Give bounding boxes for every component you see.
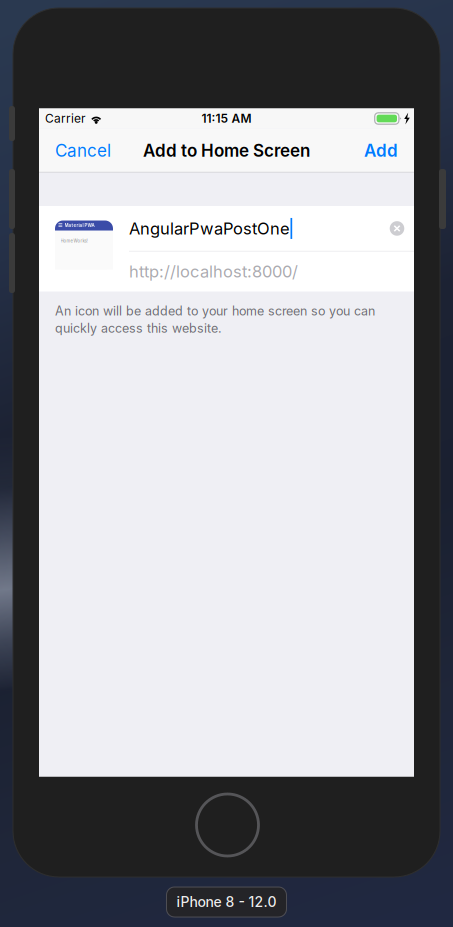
staticText: An icon will be added to your home scree… [55, 303, 375, 319]
staticText: Add [364, 140, 398, 161]
staticText: Carrier [45, 111, 86, 126]
staticText: 11:15 AM [201, 111, 251, 126]
staticText: quickly access this website. [55, 321, 222, 336]
button[interactable]: Add [352, 128, 414, 172]
staticText: Home Works! [60, 238, 87, 243]
staticText: AngularPwaPostOne [129, 218, 290, 238]
staticText: iPhone 8 - 12.0 [176, 893, 276, 910]
button[interactable]: iPhone 8 - 12.0 [166, 887, 286, 917]
staticText: Add to Home Screen [143, 140, 310, 161]
staticText: Material PWA [64, 223, 94, 228]
staticText: Home Works! [60, 237, 87, 243]
staticText: http://localhost:8000/ [129, 261, 298, 281]
staticText: Cancel [55, 140, 111, 161]
button[interactable]: Clear text [380, 206, 414, 250]
button[interactable]: Cancel [39, 128, 123, 172]
